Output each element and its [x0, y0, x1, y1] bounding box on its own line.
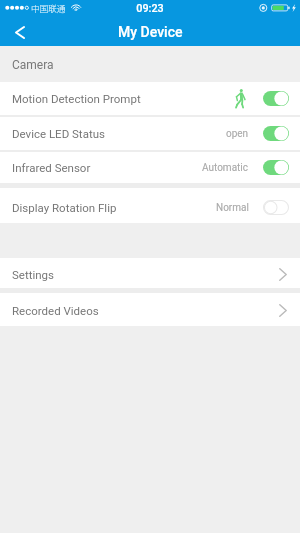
staticText: 中国联通 [31, 2, 66, 14]
staticText: open [226, 128, 249, 140]
button[interactable]: Switch on [263, 160, 289, 175]
button[interactable]: Switch off [263, 200, 289, 215]
button[interactable]: Display Rotation Flip [0, 188, 300, 223]
staticText: Settings [12, 268, 54, 281]
staticText: 09:23 [0, 2, 300, 15]
staticText: Normal [216, 202, 249, 214]
staticText: Motion Detection Prompt [12, 92, 141, 105]
staticText: My Device [118, 24, 183, 40]
button[interactable]: Motion Detection Prompt [0, 82, 300, 117]
button[interactable]: Settings [0, 258, 300, 293]
button[interactable]: Switch on [263, 91, 289, 106]
button[interactable]: Infrared Sensor [0, 152, 300, 188]
staticText: Display Rotation Flip [12, 201, 117, 214]
staticText: Automatic [202, 162, 249, 174]
staticText: Infrared Sensor [12, 161, 91, 174]
staticText: Device LED Status [12, 127, 105, 140]
button[interactable]: Back [0, 18, 40, 46]
staticText: Camera [12, 58, 54, 72]
button[interactable]: Device LED Status [0, 117, 300, 152]
button[interactable]: Switch on [263, 126, 289, 141]
button[interactable]: Recorded Videos [0, 293, 300, 326]
staticText: Recorded Videos [12, 304, 99, 317]
